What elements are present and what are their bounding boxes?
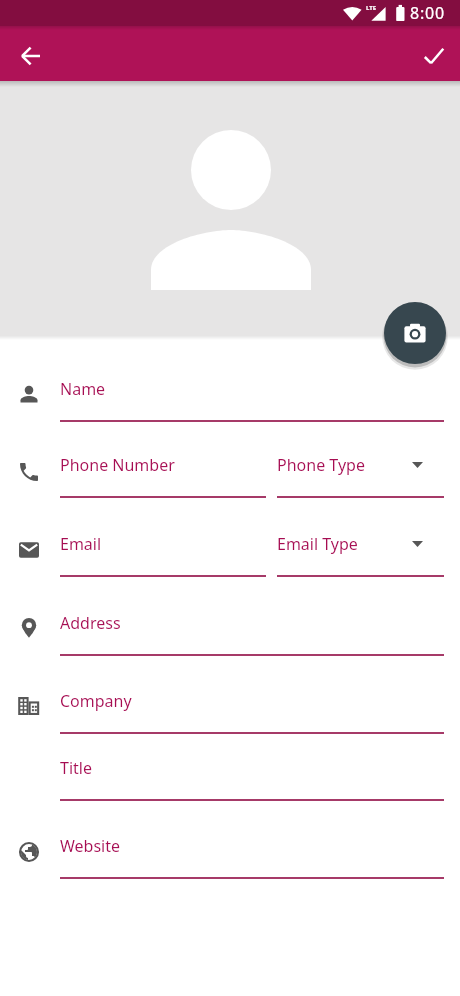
- staticText: 8:00: [410, 2, 445, 24]
- button[interactable]: Phone Type: [277, 450, 444, 498]
- button[interactable]: [0, 81, 460, 336]
- button[interactable]: Company: [60, 686, 444, 734]
- button[interactable]: Website: [60, 831, 444, 879]
- staticText: Title: [60, 757, 92, 779]
- button[interactable]: [7, 37, 55, 75]
- staticText: Website: [60, 835, 121, 857]
- staticText: Email: [60, 533, 102, 555]
- button[interactable]: Phone Number: [60, 450, 266, 498]
- staticText: Phone Number: [60, 454, 175, 476]
- staticText: Company: [60, 690, 132, 712]
- staticText: Name: [60, 378, 106, 400]
- button[interactable]: [410, 37, 458, 75]
- staticText: Address: [60, 612, 121, 634]
- button[interactable]: Address: [60, 608, 444, 656]
- button[interactable]: [384, 302, 446, 364]
- button[interactable]: Email: [60, 529, 266, 577]
- staticText: Email Type: [277, 533, 358, 555]
- button[interactable]: Name: [60, 374, 444, 422]
- button[interactable]: Title: [60, 753, 444, 801]
- staticText: Phone Type: [277, 454, 365, 476]
- button[interactable]: Email Type: [277, 529, 444, 577]
- staticText: LTE: [366, 4, 377, 12]
